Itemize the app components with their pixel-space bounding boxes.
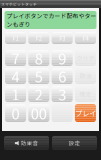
button[interactable]: 効果音 [4, 136, 49, 150]
button[interactable]: 3 [52, 86, 73, 102]
staticText: プレイボタンでカード配布やター [6, 11, 96, 20]
button[interactable]: クリア [75, 50, 96, 66]
button[interactable]: F4 [75, 32, 96, 44]
button[interactable]: 4 [5, 68, 26, 84]
button[interactable]: 00 [28, 104, 49, 122]
button[interactable] [52, 104, 73, 122]
staticText: プレイ [75, 108, 96, 118]
button[interactable]: F1 [5, 32, 26, 44]
button[interactable]: 1 [5, 86, 26, 102]
button[interactable]: 取消 [75, 68, 96, 84]
staticText: 7 [11, 47, 19, 69]
button[interactable]: 6 [52, 68, 73, 84]
button[interactable]: 2 [28, 86, 49, 102]
staticText: 3 [58, 83, 66, 105]
staticText: 0 [11, 102, 19, 124]
button[interactable]: F3 [52, 32, 73, 44]
staticText: 6 [58, 65, 66, 87]
staticText: 設定 [68, 139, 80, 147]
button[interactable]: 0 [5, 104, 26, 122]
staticText: スマホビットタッチ [1, 1, 37, 7]
staticText: 00 [31, 102, 47, 124]
button[interactable]: 9 [52, 50, 73, 66]
button[interactable]: 確定 [75, 86, 96, 102]
staticText: 5 [35, 65, 43, 87]
staticText: 4 [11, 65, 19, 87]
staticText: 8 [35, 47, 43, 69]
button[interactable]: F2 [28, 32, 49, 44]
staticText: 1 [11, 83, 19, 105]
button[interactable]: プレイ [75, 104, 96, 122]
button[interactable]: 設定 [52, 136, 97, 150]
staticText: F2 [36, 34, 42, 42]
staticText: F4 [82, 34, 88, 42]
button[interactable]: 8 [28, 50, 49, 66]
staticText: 2 [35, 83, 43, 105]
button[interactable]: 7 [5, 50, 26, 66]
staticText: 取消 [79, 72, 91, 80]
staticText: ンもぎり [6, 20, 30, 28]
staticText: 効果音 [20, 139, 38, 147]
button[interactable]: 5 [28, 68, 49, 84]
staticText: F1 [12, 34, 18, 42]
staticText: 9 [58, 47, 66, 69]
staticText: F3 [59, 34, 65, 42]
staticText: 確定 [79, 90, 91, 98]
